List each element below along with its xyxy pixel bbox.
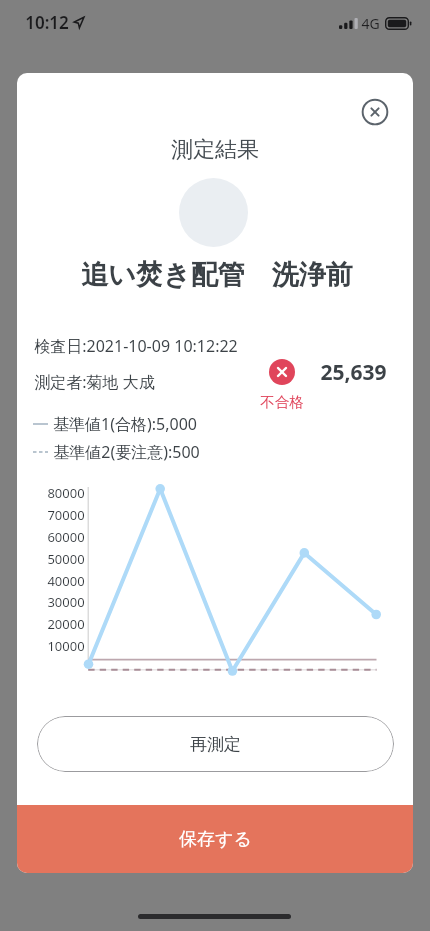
staticText: 測定結果 xyxy=(171,136,259,162)
staticText: 再測定 xyxy=(190,734,241,755)
staticText: 基準値2(要注意):500 xyxy=(53,441,200,463)
staticText: 不合格 xyxy=(260,393,304,411)
staticText: 25,639 xyxy=(320,358,387,386)
staticText: 測定者:菊地 大成 xyxy=(34,371,155,393)
button[interactable]: Close xyxy=(356,93,394,131)
staticText: 70000 xyxy=(47,506,85,522)
staticText: 10:12 xyxy=(25,11,69,34)
staticText: 60000 xyxy=(47,528,85,544)
staticText: 保存する xyxy=(179,828,252,851)
staticText: 追い焚き配管 洗浄前 xyxy=(81,255,353,292)
staticText: 10000 xyxy=(47,637,85,653)
staticText: 30000 xyxy=(47,593,85,609)
staticText: 基準値1(合格):5,000 xyxy=(53,413,197,435)
staticText: 20000 xyxy=(47,615,85,631)
button[interactable]: 再測定 xyxy=(37,716,394,772)
staticText: 80000 xyxy=(47,484,85,500)
staticText: 50000 xyxy=(47,550,85,566)
staticText: 40000 xyxy=(47,572,85,588)
staticText: 4G xyxy=(361,14,380,33)
button[interactable]: 保存する xyxy=(17,805,413,873)
staticText: 検査日:2021-10-09 10:12:22 xyxy=(34,335,238,357)
